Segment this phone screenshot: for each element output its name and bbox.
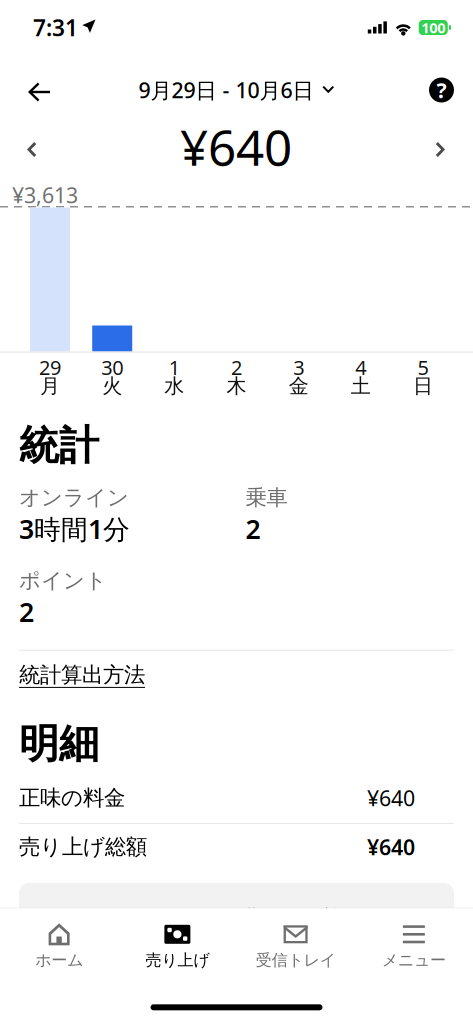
staticText: ¥640 — [367, 833, 415, 861]
button[interactable]: ドライバーが獲得した詳細 — [19, 883, 454, 948]
button[interactable]: Back — [0, 55, 68, 125]
staticText: 売り上げ — [145, 950, 209, 970]
staticText: 4 — [355, 354, 366, 380]
staticText: 火 — [102, 374, 122, 398]
staticText: 正味の料金 — [19, 785, 125, 811]
button[interactable]: ホーム — [0, 908, 118, 990]
button[interactable]: 統計算出方法 — [19, 651, 145, 692]
staticText: 2 — [245, 511, 260, 546]
staticText: ¥3,613 — [12, 181, 78, 209]
staticText: 2 — [19, 594, 34, 629]
button[interactable]: 9月29日 - 10月6日 — [138, 55, 334, 125]
button[interactable]: Help — [410, 55, 473, 125]
staticText: ホーム — [35, 950, 83, 970]
staticText: 9月29日 - 10月6日 — [138, 76, 313, 104]
staticText: 土 — [351, 374, 371, 398]
staticText: 木 — [226, 374, 246, 398]
button[interactable]: メニュー — [355, 908, 473, 990]
staticText: ¥640 — [180, 114, 292, 179]
staticText: 3時間1分 — [19, 511, 130, 546]
staticText: 1 — [169, 354, 180, 380]
staticText: 乗車 — [245, 485, 287, 511]
staticText: 7:31 — [33, 12, 78, 42]
staticText: ドライバーが獲得した詳細 — [107, 905, 366, 931]
button[interactable]: 受信トレイ — [236, 908, 355, 990]
staticText: 2 — [231, 354, 242, 380]
staticText: 29 — [39, 354, 61, 380]
staticText: 水 — [164, 374, 184, 398]
staticText: 統計算出方法 — [19, 662, 145, 688]
button[interactable]: Next week — [416, 125, 473, 184]
staticText: 3 — [293, 354, 304, 380]
staticText: ポイント — [19, 568, 107, 594]
staticText: 受信トレイ — [256, 950, 336, 970]
staticText: オンライン — [19, 485, 129, 511]
staticText: 月 — [40, 374, 60, 398]
staticText: 5 — [417, 354, 428, 380]
staticText: 明細 — [19, 719, 99, 768]
staticText: 日 — [413, 374, 433, 398]
staticText: ? — [436, 76, 446, 104]
staticText: 30 — [101, 354, 123, 380]
staticText: 売り上げ総額 — [19, 834, 147, 860]
button[interactable]: 売り上げ — [118, 908, 236, 990]
staticText: 統計 — [19, 421, 99, 470]
staticText: 100 — [421, 18, 445, 37]
button[interactable]: Previous week — [0, 125, 56, 184]
staticText: ¥640 — [367, 784, 415, 812]
staticText: メニュー — [382, 950, 446, 970]
staticText: 金 — [289, 374, 309, 398]
